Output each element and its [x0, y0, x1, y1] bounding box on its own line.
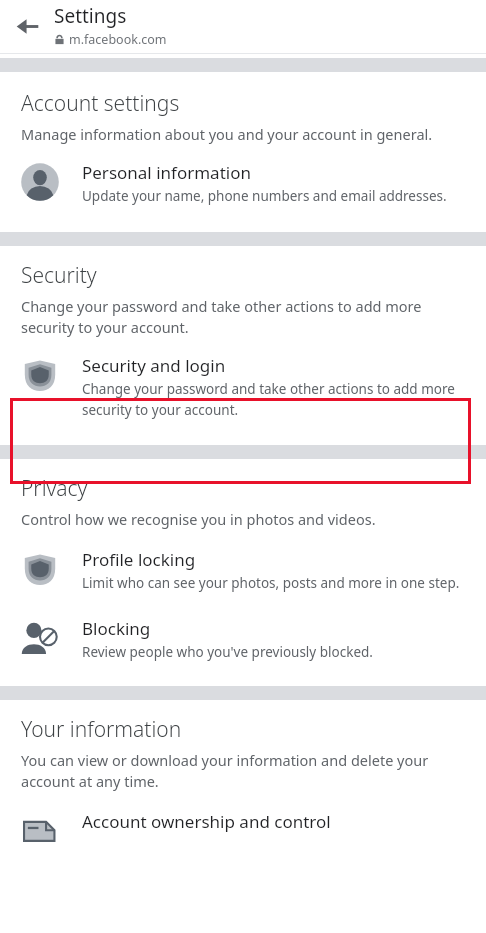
staticText: Settings	[54, 3, 127, 29]
staticText: Personal information	[82, 161, 251, 184]
staticText: Profile locking	[82, 548, 196, 571]
button[interactable]: Profile locking	[0, 543, 486, 596]
button[interactable]: Back	[0, 0, 54, 53]
staticText: Account ownership and control	[82, 810, 331, 833]
button[interactable]: Account ownership and control	[0, 805, 486, 857]
staticText: Blocking	[82, 617, 151, 640]
button[interactable]: Security and login	[0, 349, 486, 423]
staticText: Account settings	[21, 89, 180, 118]
staticText: Security and login	[82, 354, 226, 377]
staticText: You can view or download your informatio…	[21, 750, 452, 792]
staticText: Change your password and take other acti…	[21, 296, 452, 338]
staticText: Your information	[21, 715, 182, 744]
staticText: Update your name, phone numbers and emai…	[82, 187, 447, 205]
staticText: Security	[21, 261, 97, 290]
staticText: m.facebook.com	[69, 31, 167, 48]
staticText: Manage information about you and your ac…	[21, 124, 433, 144]
staticText: Change your password and take other acti…	[82, 380, 464, 419]
staticText: Control how we recognise you in photos a…	[21, 509, 376, 529]
button[interactable]: Blocking	[0, 612, 486, 665]
staticText: Privacy	[21, 474, 88, 503]
staticText: Limit who can see your photos, posts and…	[82, 574, 460, 592]
staticText: Review people who you've previously bloc…	[82, 643, 373, 661]
button[interactable]: Personal information	[0, 156, 486, 209]
